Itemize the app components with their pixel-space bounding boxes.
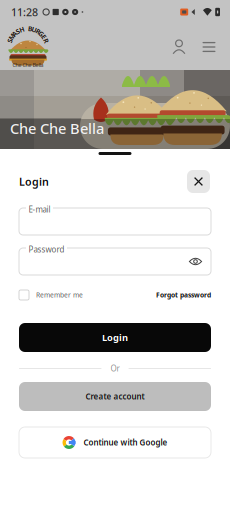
staticText: Login: [19, 174, 49, 189]
staticText: A: [25, 24, 30, 33]
staticText: B: [26, 24, 30, 33]
staticText: R: [26, 24, 30, 33]
staticText: Continue with Google: [83, 437, 167, 448]
staticText: E-mail: [28, 204, 50, 215]
staticText: [27, 24, 29, 33]
button[interactable]: Forgot password: [156, 288, 211, 302]
staticText: 11:28: [11, 5, 38, 19]
staticText: S: [26, 24, 30, 33]
button[interactable]: Account: [164, 31, 194, 63]
button[interactable]: Menu: [194, 31, 224, 63]
staticText: Login: [102, 331, 128, 344]
staticText: U: [25, 24, 30, 33]
button[interactable]: Login: [19, 323, 211, 352]
staticText: Password: [28, 244, 64, 255]
staticText: G: [25, 24, 30, 33]
staticText: M: [25, 24, 31, 33]
staticText: Forgot password: [156, 291, 211, 299]
button[interactable]: Create account: [19, 382, 211, 411]
staticText: Or: [110, 363, 119, 374]
button[interactable]: Continue with Google: [19, 427, 211, 458]
staticText: E: [26, 24, 30, 33]
staticText: R: [26, 24, 30, 33]
staticText: Che Che Bella: [12, 61, 43, 69]
staticText: Che Che Bella: [10, 118, 104, 138]
button[interactable]: Close: [187, 170, 210, 193]
staticText: H: [25, 24, 30, 33]
button[interactable]: Remember me: [19, 288, 83, 302]
staticText: Remember me: [36, 291, 83, 299]
staticText: S: [26, 24, 30, 33]
staticText: Create account: [85, 391, 144, 402]
